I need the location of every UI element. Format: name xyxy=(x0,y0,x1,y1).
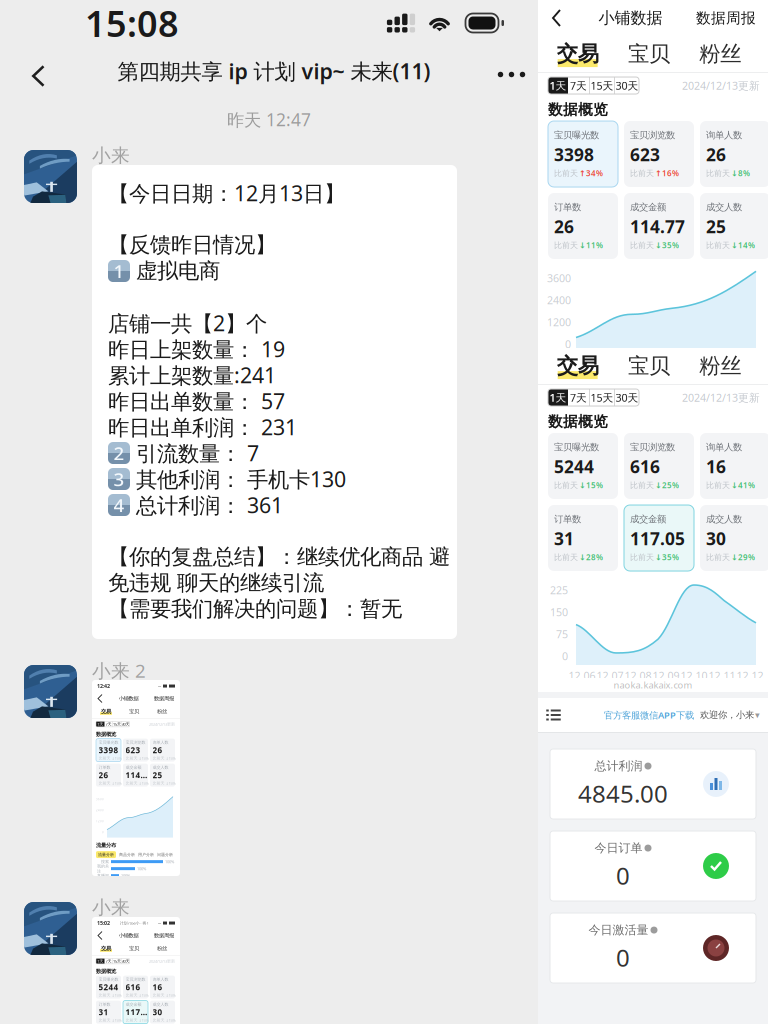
staticText: 宝贝 xyxy=(628,41,670,67)
button[interactable]: Back xyxy=(0,46,63,92)
staticText: ↓29% xyxy=(731,552,755,562)
staticText: 【你的复盘总结】：继续优化商品 避 xyxy=(108,544,450,570)
staticText: 昨日出单数量： 57 xyxy=(108,387,285,415)
staticText: 比前天 xyxy=(630,480,654,490)
button[interactable]: 交易 xyxy=(542,348,613,384)
staticText: 0 xyxy=(562,649,568,663)
staticText: 成交人数 xyxy=(706,201,742,213)
staticText: 用户分析 xyxy=(138,852,154,857)
staticText: 小铺数据 xyxy=(118,695,138,702)
staticText: 100% xyxy=(137,866,146,871)
staticText: 第四期共享 ip 计划 vip~ 未来(11) xyxy=(117,57,430,85)
staticText: 2024/12/13更新 xyxy=(149,958,175,964)
button[interactable]: 粉丝 xyxy=(685,36,756,72)
staticText: 7天 xyxy=(570,390,587,405)
button[interactable]: 交易 xyxy=(542,36,613,72)
staticText: 虚拟电商 xyxy=(136,258,220,284)
staticText: 0 xyxy=(565,337,571,351)
button[interactable]: 数据周报 xyxy=(692,3,760,33)
staticText: 12.11 xyxy=(708,668,735,683)
button[interactable]: Screenshot xyxy=(92,917,180,1024)
staticText: 宝贝曝光数 xyxy=(554,441,599,453)
staticText: 数据概览 xyxy=(548,100,608,118)
staticText: 3 xyxy=(113,467,124,491)
staticText: 今日订单 xyxy=(594,841,642,855)
staticText: ↓11% xyxy=(579,240,603,250)
button[interactable]: 小来 2 avatar xyxy=(24,665,77,718)
staticText: 昨日上架数量： 19 xyxy=(108,335,285,363)
staticText: 流量分析 xyxy=(98,852,114,857)
staticText: 昨日出单利润： 231 xyxy=(108,413,297,441)
button[interactable]: More options xyxy=(495,41,528,96)
staticText: 623 xyxy=(125,745,140,755)
staticText: 比前天 ↓15% xyxy=(98,992,121,998)
staticText: 问题分析 xyxy=(157,852,173,857)
staticText: 比前天 ↓15% xyxy=(152,780,175,786)
staticText: ↓41% xyxy=(731,480,755,490)
button[interactable]: 官方客服微信APP下载 xyxy=(604,709,695,721)
staticText: 比前天 ↓15% xyxy=(125,992,148,998)
staticText: ··· xyxy=(158,919,161,927)
staticText: ↑34% xyxy=(579,168,603,178)
staticText: 小来 xyxy=(92,144,130,167)
staticText: 15天 xyxy=(590,78,613,93)
staticText: 交易 xyxy=(557,353,599,379)
staticText: 114.77 xyxy=(630,215,685,238)
staticText: 宝贝曝光数 xyxy=(554,129,599,141)
staticText: 2400 xyxy=(547,293,571,307)
staticText: 30天 xyxy=(121,958,129,964)
staticText: 2024/12/13更新 xyxy=(682,78,760,93)
button[interactable]: Menu xyxy=(538,700,569,730)
staticText: 【今日日期：12月13日】 xyxy=(108,179,345,207)
staticText: 15天 xyxy=(113,721,121,727)
staticText: 小来 xyxy=(92,896,130,919)
staticText: 15天 xyxy=(590,390,613,405)
staticText: 数据周报 xyxy=(696,9,756,27)
staticText: 12.08 xyxy=(624,668,651,683)
staticText: 12.06 xyxy=(568,668,595,683)
staticText: 15:08 xyxy=(85,0,179,47)
staticText: 1200 xyxy=(547,315,571,329)
button[interactable]: 小来 avatar xyxy=(24,902,77,955)
staticText: 宝贝曝光数 xyxy=(98,740,118,745)
staticText: 比前天 xyxy=(706,480,730,490)
button[interactable]: 宝贝 xyxy=(613,36,685,72)
staticText: 12:42 xyxy=(97,682,110,690)
staticText: 3398 xyxy=(98,745,118,755)
staticText: 30天 xyxy=(615,390,638,405)
staticText: ↓35% xyxy=(655,240,679,250)
staticText: 5244 xyxy=(98,982,118,992)
button[interactable]: 宝贝 xyxy=(613,348,685,384)
staticText: 15天 xyxy=(113,958,121,964)
staticText: ··· xyxy=(158,682,161,690)
staticText: 比前天 xyxy=(706,168,730,178)
staticText: 粉丝 xyxy=(699,353,741,379)
staticText: 比前天 ↓15% xyxy=(152,992,175,998)
staticText: 小铺数据 xyxy=(598,8,662,28)
staticText: 询单人数 xyxy=(152,740,168,745)
staticText: 150 xyxy=(550,605,568,619)
staticText: naoka.kakaix.com xyxy=(613,679,692,691)
staticText: 25 xyxy=(152,770,162,780)
button[interactable]: 小来 avatar xyxy=(24,150,77,203)
staticText: 0 xyxy=(616,859,630,891)
staticText: 宝贝浏览数 xyxy=(125,977,145,982)
staticText: 3398 xyxy=(554,143,594,166)
button[interactable]: 粉丝 xyxy=(685,348,756,384)
staticText: 数据概览 xyxy=(548,412,608,430)
staticText: 比前天 ↓15% xyxy=(98,780,121,786)
staticText: 616 xyxy=(125,982,140,992)
staticText: 【反馈昨日情况】 xyxy=(108,232,276,258)
staticText: 总计利润 xyxy=(594,759,642,773)
staticText: 宝贝 xyxy=(129,945,139,952)
staticText: 成交人数 xyxy=(152,765,168,770)
staticText: 宝贝浏览数 xyxy=(630,129,675,141)
button[interactable]: Screenshot xyxy=(92,680,180,876)
staticText: 数据周报 xyxy=(154,932,174,939)
staticText: 比前天 ↓15% xyxy=(152,755,175,761)
staticText: 小铺数据 xyxy=(118,932,138,939)
button[interactable]: Back xyxy=(544,2,569,34)
staticText: 其他利润： 手机卡130 xyxy=(136,465,346,493)
staticText: 订单数 xyxy=(554,513,581,525)
